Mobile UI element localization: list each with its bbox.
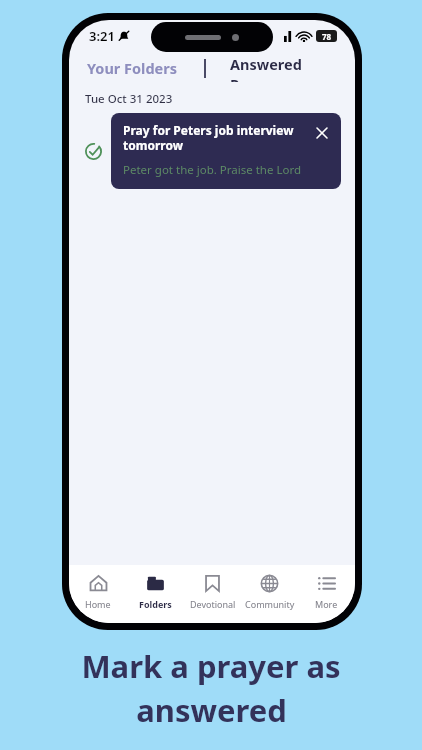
staticText: Answered Prayers: [230, 54, 353, 82]
button[interactable]: Dismiss: [311, 122, 333, 144]
staticText: answered: [136, 689, 287, 731]
staticText: Tue Oct 31 2023: [85, 91, 173, 107]
staticText: Community: [245, 598, 295, 610]
staticText: Your Folders: [87, 58, 178, 78]
button[interactable]: Pray for Peters job interview tomorrow: [111, 113, 341, 189]
button[interactable]: Home: [69, 565, 127, 623]
staticText: Peter got the job. Praise the Lord: [123, 162, 301, 178]
staticText: Devotional: [190, 598, 236, 610]
button[interactable]: Folders: [127, 565, 184, 623]
button[interactable]: Answered Prayers: [228, 51, 355, 85]
staticText: Pray for Peters job interview tomorrow: [123, 122, 307, 154]
button[interactable]: More: [298, 565, 355, 623]
button[interactable]: Answered: [79, 137, 107, 165]
staticText: 78: [322, 31, 332, 42]
button[interactable]: Community: [241, 565, 298, 623]
staticText: 3:21: [89, 27, 115, 45]
staticText: Home: [85, 598, 111, 610]
button[interactable]: Devotional: [184, 565, 241, 623]
staticText: Mark a prayer as: [81, 645, 341, 687]
button[interactable]: Your Folders: [85, 55, 180, 81]
staticText: More: [315, 598, 338, 610]
staticText: Folders: [139, 598, 172, 610]
